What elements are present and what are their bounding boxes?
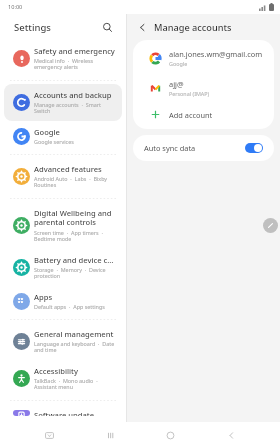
button[interactable]: Software update bbox=[4, 404, 122, 422]
button[interactable]: Hide keyboard bbox=[38, 424, 60, 446]
staticText: Safety and emergency bbox=[34, 46, 115, 56]
staticText: Screen time · App timers · Bedtime mode bbox=[34, 229, 116, 243]
staticText: Manage accounts · Smart Switch bbox=[34, 101, 116, 115]
staticText: Language and keyboard · Date and time bbox=[34, 340, 116, 354]
staticText: Settings bbox=[14, 21, 98, 34]
button[interactable]: Home bbox=[159, 424, 181, 446]
button[interactable]: General management bbox=[4, 323, 122, 360]
button[interactable]: Add account bbox=[133, 103, 274, 126]
button[interactable]: Edit bbox=[263, 218, 278, 233]
staticText: Manage accounts bbox=[154, 21, 232, 34]
button[interactable]: Accessibility bbox=[4, 360, 122, 397]
staticText: ajj@ bbox=[169, 79, 184, 89]
button[interactable]: Digital Wellbeing and parental controls bbox=[4, 202, 122, 249]
button[interactable]: Safety and emergency bbox=[4, 40, 122, 77]
staticText: 10:00 bbox=[8, 3, 23, 11]
button[interactable]: Battery and device care bbox=[4, 249, 122, 286]
staticText: Personal (IMAP) bbox=[169, 90, 210, 97]
staticText: Accounts and backup bbox=[34, 90, 112, 100]
staticText: Google services bbox=[34, 138, 74, 145]
button[interactable]: Auto sync data bbox=[133, 135, 274, 161]
staticText: Accessibility bbox=[34, 366, 78, 376]
button[interactable]: Back bbox=[220, 424, 242, 446]
staticText: Google bbox=[169, 60, 188, 67]
staticText: Advanced features bbox=[34, 164, 102, 174]
staticText: Add account bbox=[169, 110, 213, 120]
staticText: Google bbox=[34, 127, 60, 137]
button[interactable]: alan.jones.wm@gmail.com bbox=[133, 43, 274, 73]
staticText: Apps bbox=[34, 292, 53, 302]
staticText: Android Auto · Labs · Bixby Routines bbox=[34, 175, 116, 189]
staticText: General management bbox=[34, 329, 114, 339]
button[interactable]: Apps bbox=[4, 286, 122, 316]
staticText: TalkBack · Mono audio · Assistant menu bbox=[34, 377, 116, 391]
staticText: Battery and device care bbox=[34, 255, 116, 265]
button[interactable]: Recent apps bbox=[99, 424, 121, 446]
staticText: Storage · Memory · Device protection bbox=[34, 266, 116, 280]
staticText: Software update bbox=[34, 410, 95, 416]
button[interactable]: ajj@ bbox=[133, 73, 274, 103]
staticText: Default apps · App settings bbox=[34, 303, 105, 310]
staticText: Auto sync data bbox=[144, 143, 245, 153]
button[interactable]: Search settings bbox=[98, 18, 116, 36]
button[interactable]: Back bbox=[134, 19, 151, 36]
button[interactable]: Accounts and backup bbox=[4, 84, 122, 121]
button[interactable]: Advanced features bbox=[4, 158, 122, 195]
staticText: Digital Wellbeing and parental controls bbox=[34, 208, 116, 228]
staticText: alan.jones.wm@gmail.com bbox=[169, 49, 263, 59]
staticText: Medical info · Wireless emergency alerts bbox=[34, 57, 116, 71]
button[interactable]: Google bbox=[4, 121, 122, 151]
